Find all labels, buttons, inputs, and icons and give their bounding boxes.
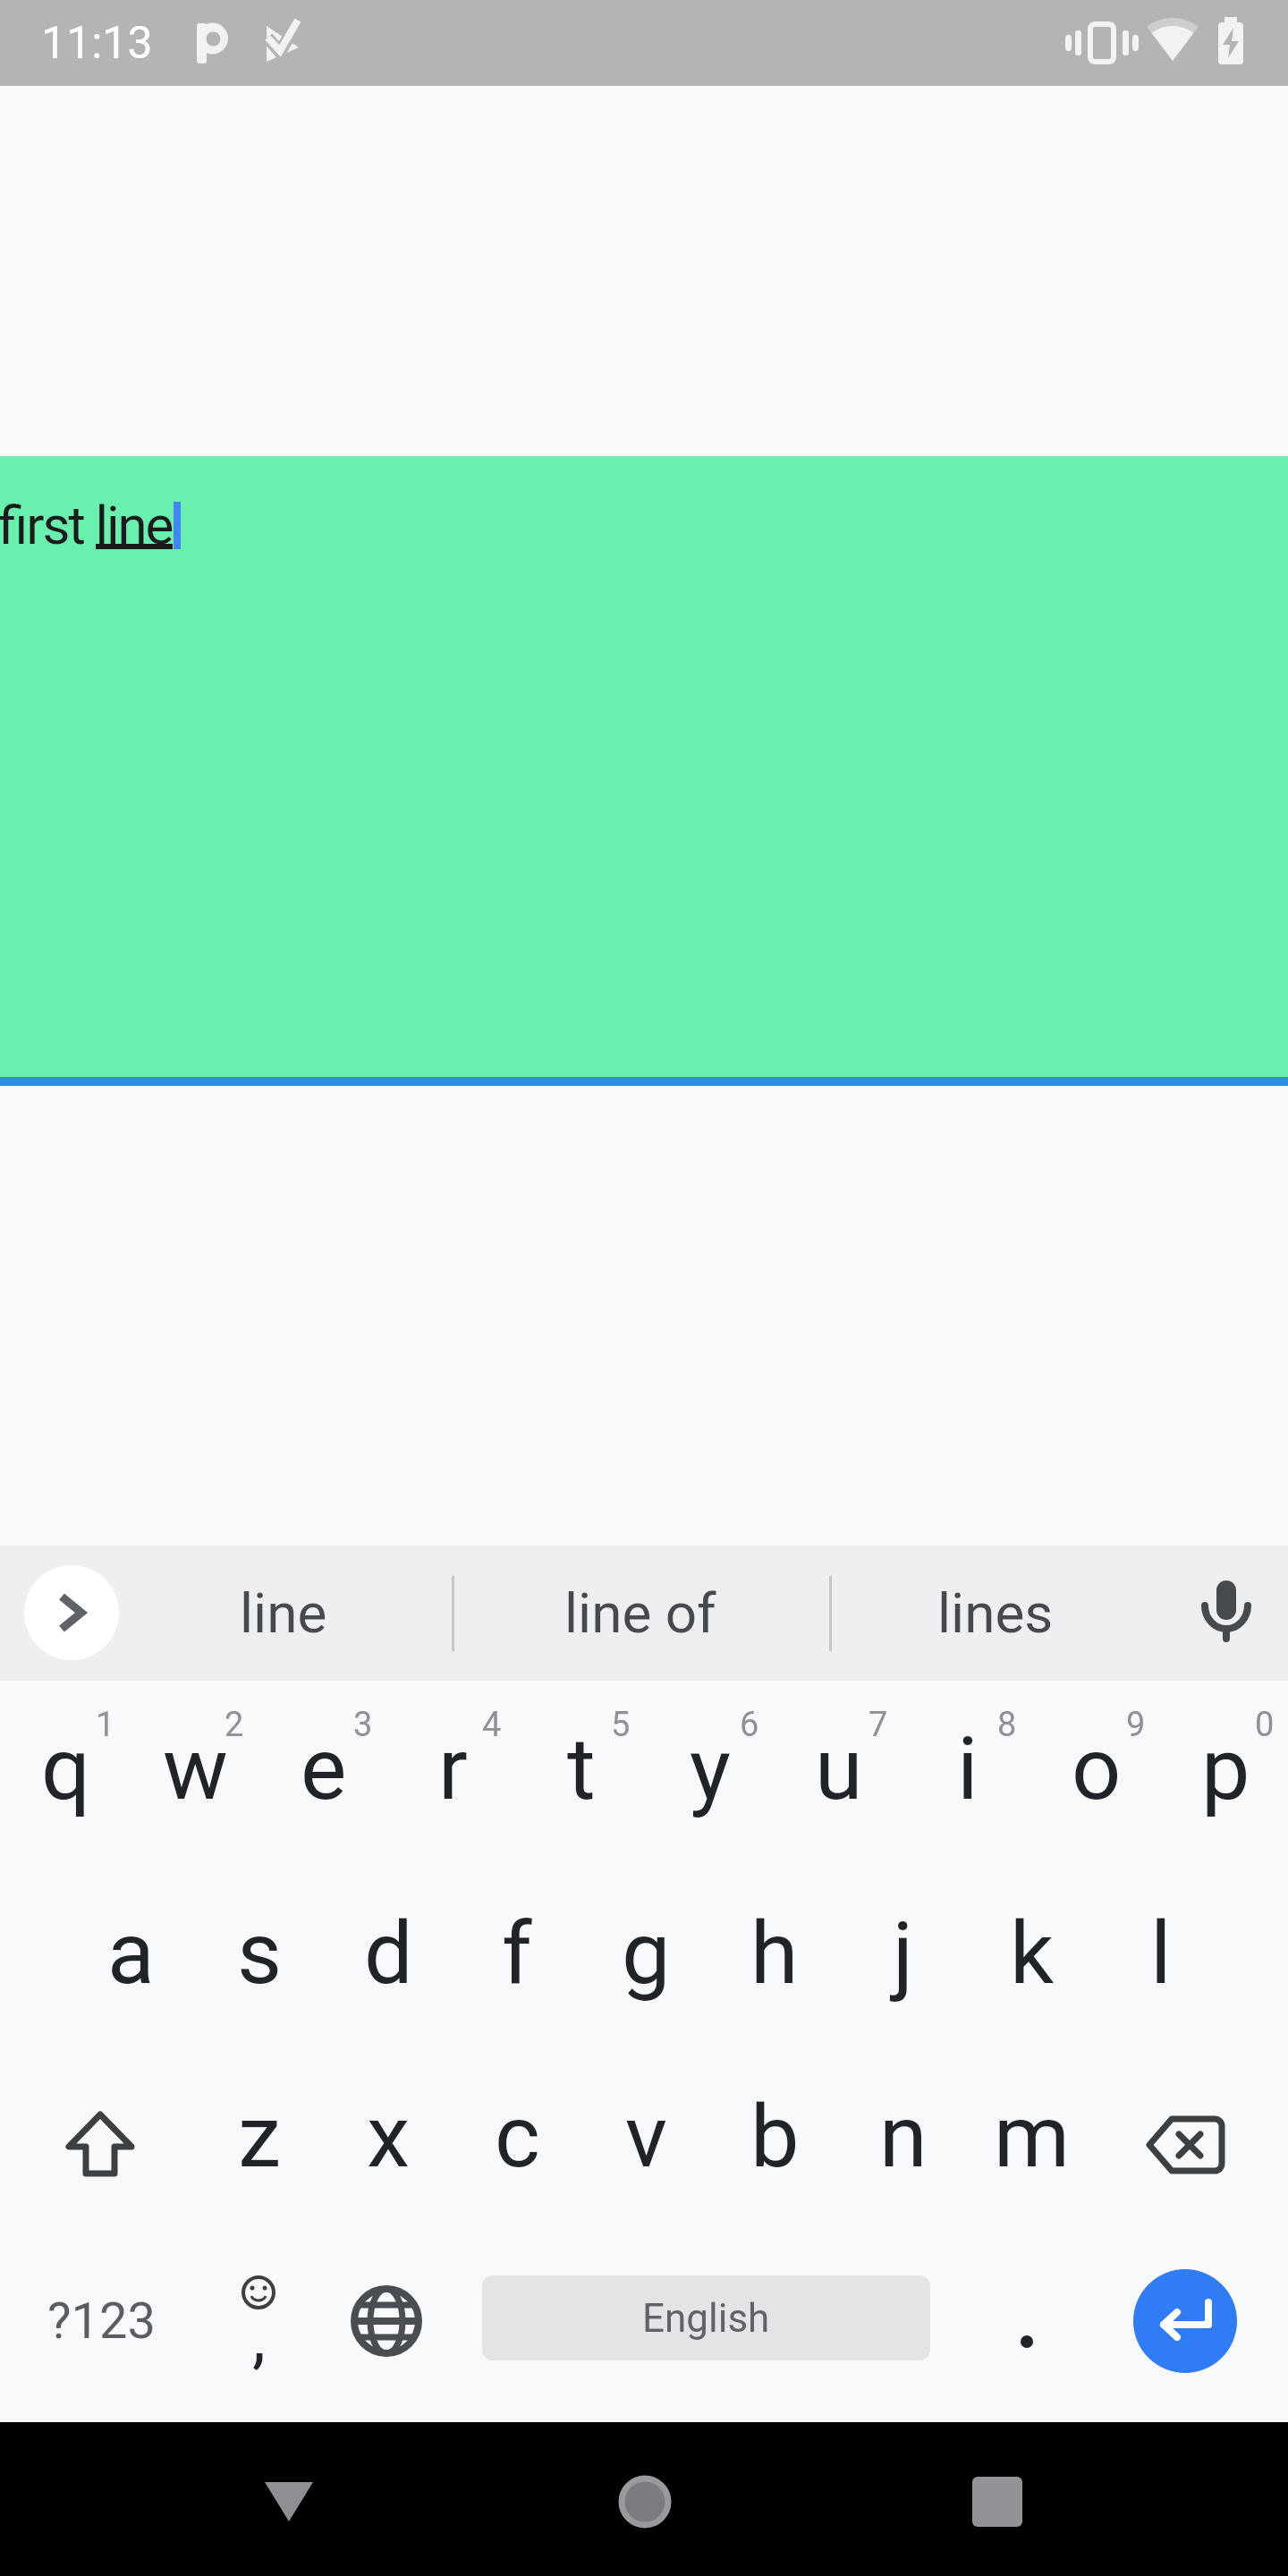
staticText: g [622,1902,671,2004]
button[interactable] [315,2250,458,2393]
button[interactable]: c [453,2047,581,2226]
staticText: n [879,2086,928,2188]
staticText: c [495,2086,540,2188]
button[interactable]: n [839,2047,968,2226]
button[interactable]: j [839,1864,968,2043]
button[interactable]: English [482,2275,930,2360]
button[interactable] [1182,1568,1271,1657]
staticText: x [367,2086,411,2188]
button[interactable]: i [903,1680,1032,1859]
button[interactable]: ?123 [16,2250,186,2393]
button[interactable]: d [324,1864,453,2043]
staticText: 6 [740,1705,759,1745]
staticText: d [364,1902,413,2004]
button[interactable]: u [775,1680,903,1859]
button[interactable]: q [2,1680,131,1859]
button[interactable]: b [710,2047,839,2226]
staticText: lines [937,1580,1054,1646]
staticText: b [750,2086,800,2188]
staticText: a [107,1902,155,2004]
button[interactable]: x [324,2047,453,2226]
staticText: u [815,1718,863,1820]
staticText: w [163,1718,228,1820]
staticText: m [994,2086,1071,2188]
button[interactable]: e [259,1680,388,1859]
button[interactable]: r [388,1680,517,1859]
staticText: 9 [1126,1705,1146,1745]
staticText: 5 [611,1705,631,1745]
staticText: t [567,1718,596,1820]
button[interactable]: z [195,2047,324,2226]
button[interactable] [573,2430,716,2573]
staticText: line [240,1580,327,1646]
staticText: f [502,1902,532,2004]
button[interactable]: lines [861,1550,1130,1675]
staticText: i [957,1718,979,1820]
staticText: z [238,2086,282,2188]
staticText: 11:13 [41,17,153,70]
staticText: l [1150,1902,1172,2004]
button[interactable]: v [581,2047,710,2226]
staticText: k [1010,1902,1055,2004]
button[interactable]: o [1032,1680,1161,1859]
button[interactable]: t [517,1680,646,1859]
staticText: v [625,2086,667,2188]
staticText: 7 [869,1705,888,1745]
staticText: y [690,1718,731,1820]
staticText: s [237,1902,283,2004]
button[interactable]: y [646,1680,775,1859]
staticText: line of [564,1580,716,1646]
staticText: 0 [1255,1705,1275,1745]
button[interactable]: a [66,1864,195,2043]
staticText: 1 [96,1705,115,1745]
button[interactable] [24,1565,119,1660]
staticText: o [1072,1718,1122,1820]
button[interactable]: line of [488,1550,792,1675]
button[interactable]: w [131,1680,259,1859]
button[interactable]: , [196,2250,321,2393]
staticText: 3 [353,1705,373,1745]
staticText: 8 [997,1705,1017,1745]
staticText: h [750,1902,799,2004]
button[interactable]: line [149,1550,418,1675]
staticText: q [41,1718,91,1820]
staticText: 4 [482,1705,502,1745]
button[interactable]: s [195,1864,324,2043]
button[interactable]: p [1161,1680,1288,1859]
button[interactable] [926,2430,1069,2573]
button[interactable] [29,2073,172,2216]
staticText: 2 [225,1705,244,1745]
button[interactable]: h [710,1864,839,2043]
staticText: English [642,2295,770,2342]
staticText: e [301,1718,347,1820]
staticText: ?123 [47,2292,156,2351]
button[interactable]: k [968,1864,1097,2043]
staticText: r [438,1718,468,1820]
button[interactable] [1114,2073,1257,2216]
button[interactable]: f [453,1864,581,2043]
staticText: first line [0,494,173,556]
button[interactable]: m [968,2047,1097,2226]
button[interactable]: l [1097,1864,1225,2043]
button[interactable]: g [581,1864,710,2043]
button[interactable] [0,456,1288,1077]
button[interactable] [973,2267,1080,2375]
staticText: j [893,1902,914,2004]
staticText: , [252,2297,266,2377]
button[interactable] [1133,2269,1237,2373]
staticText: p [1201,1718,1250,1820]
button[interactable] [217,2430,360,2573]
